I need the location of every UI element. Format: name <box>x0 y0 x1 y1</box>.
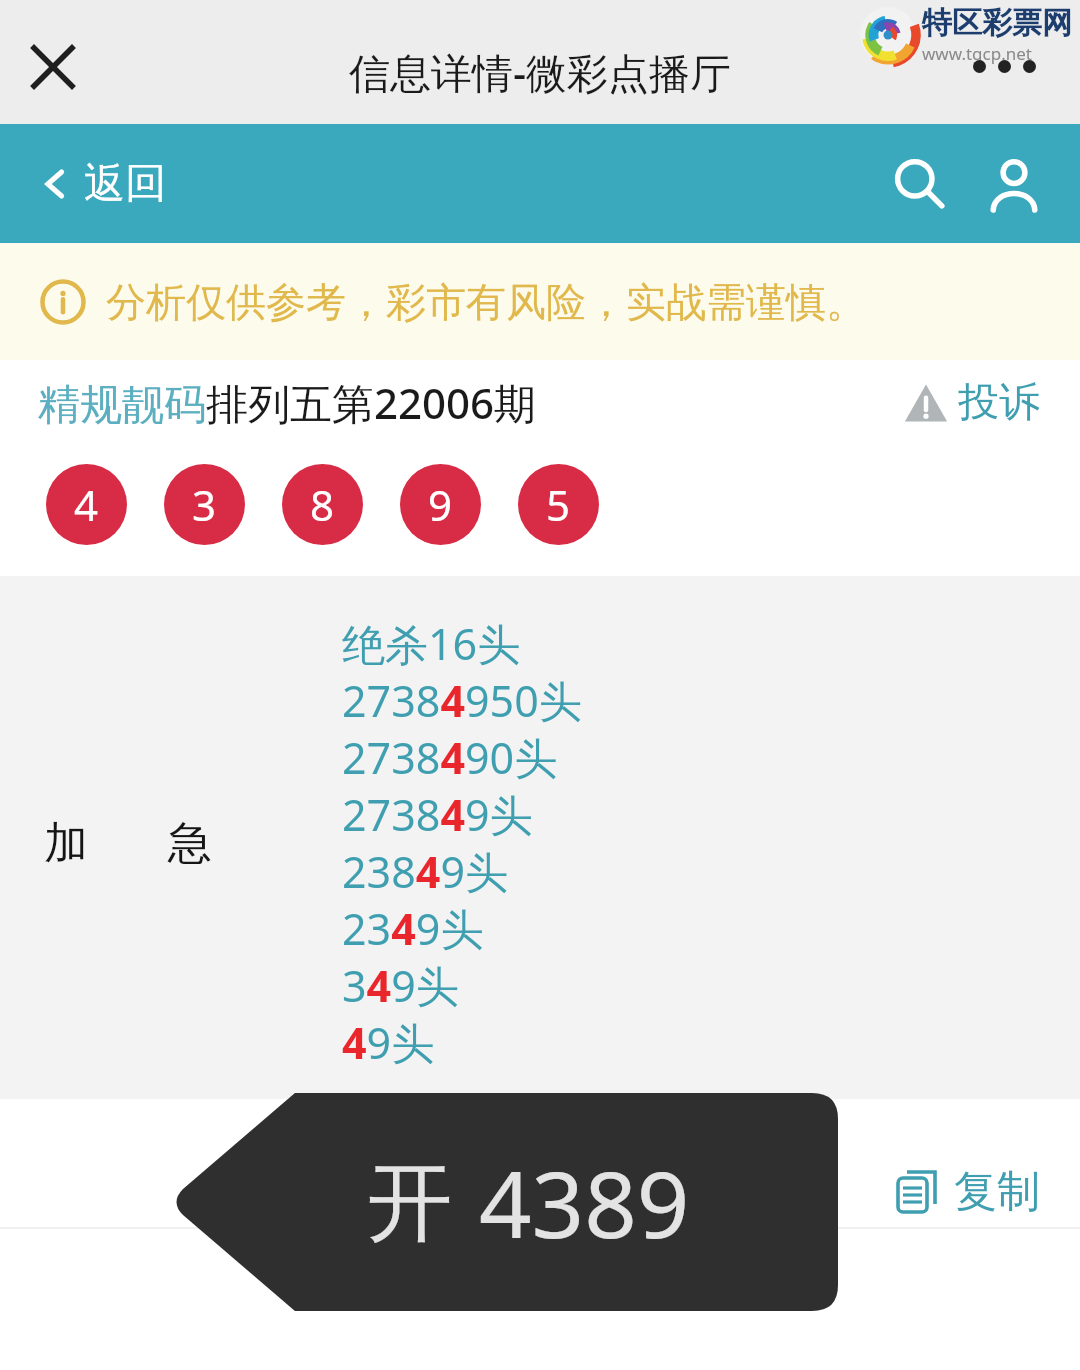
staticText: 349头 <box>342 956 459 1013</box>
staticText: 分析仅供参考，彩市有风险，实战需谨慎。 <box>106 277 866 327</box>
button[interactable]: Search <box>880 144 960 224</box>
staticText: 8 <box>310 476 335 533</box>
staticText: 绝杀16头 <box>342 614 521 671</box>
staticText: 3 <box>192 476 217 533</box>
button[interactable]: Close <box>24 38 82 96</box>
staticText: 急 <box>168 816 212 871</box>
button[interactable]: 返回 <box>34 148 172 220</box>
staticText: 49头 <box>342 1013 435 1070</box>
staticText: www.tgcp.net <box>922 42 1032 65</box>
staticText: 4389 <box>479 1140 690 1265</box>
button[interactable]: More options <box>969 56 1040 77</box>
button[interactable]: Account <box>974 144 1054 224</box>
staticText: 精规靓码排列五第22006期 <box>38 374 537 431</box>
button[interactable]: 投诉 <box>898 371 1046 435</box>
staticText: 9 <box>428 476 453 533</box>
staticText: 开 <box>367 1149 453 1257</box>
staticText: 5 <box>546 476 571 533</box>
staticText: 273849头 <box>342 785 533 842</box>
staticText: 特区彩票网 <box>922 4 1072 42</box>
staticText: 返回 <box>84 158 166 210</box>
staticText: 复制 <box>954 1165 1040 1219</box>
button[interactable]: 复制 <box>886 1159 1046 1225</box>
staticText: 4 <box>74 476 99 533</box>
staticText: 2349头 <box>342 899 484 956</box>
staticText: 投诉 <box>958 377 1040 429</box>
staticText: 信息详情-微彩点播厅 <box>0 44 1080 100</box>
button[interactable]: 开 4389 <box>170 1093 838 1311</box>
staticText: 23849头 <box>342 842 508 899</box>
staticText: 加 <box>44 816 88 871</box>
staticText: 27384950头 <box>342 671 582 728</box>
staticText: 2738490头 <box>342 728 558 785</box>
